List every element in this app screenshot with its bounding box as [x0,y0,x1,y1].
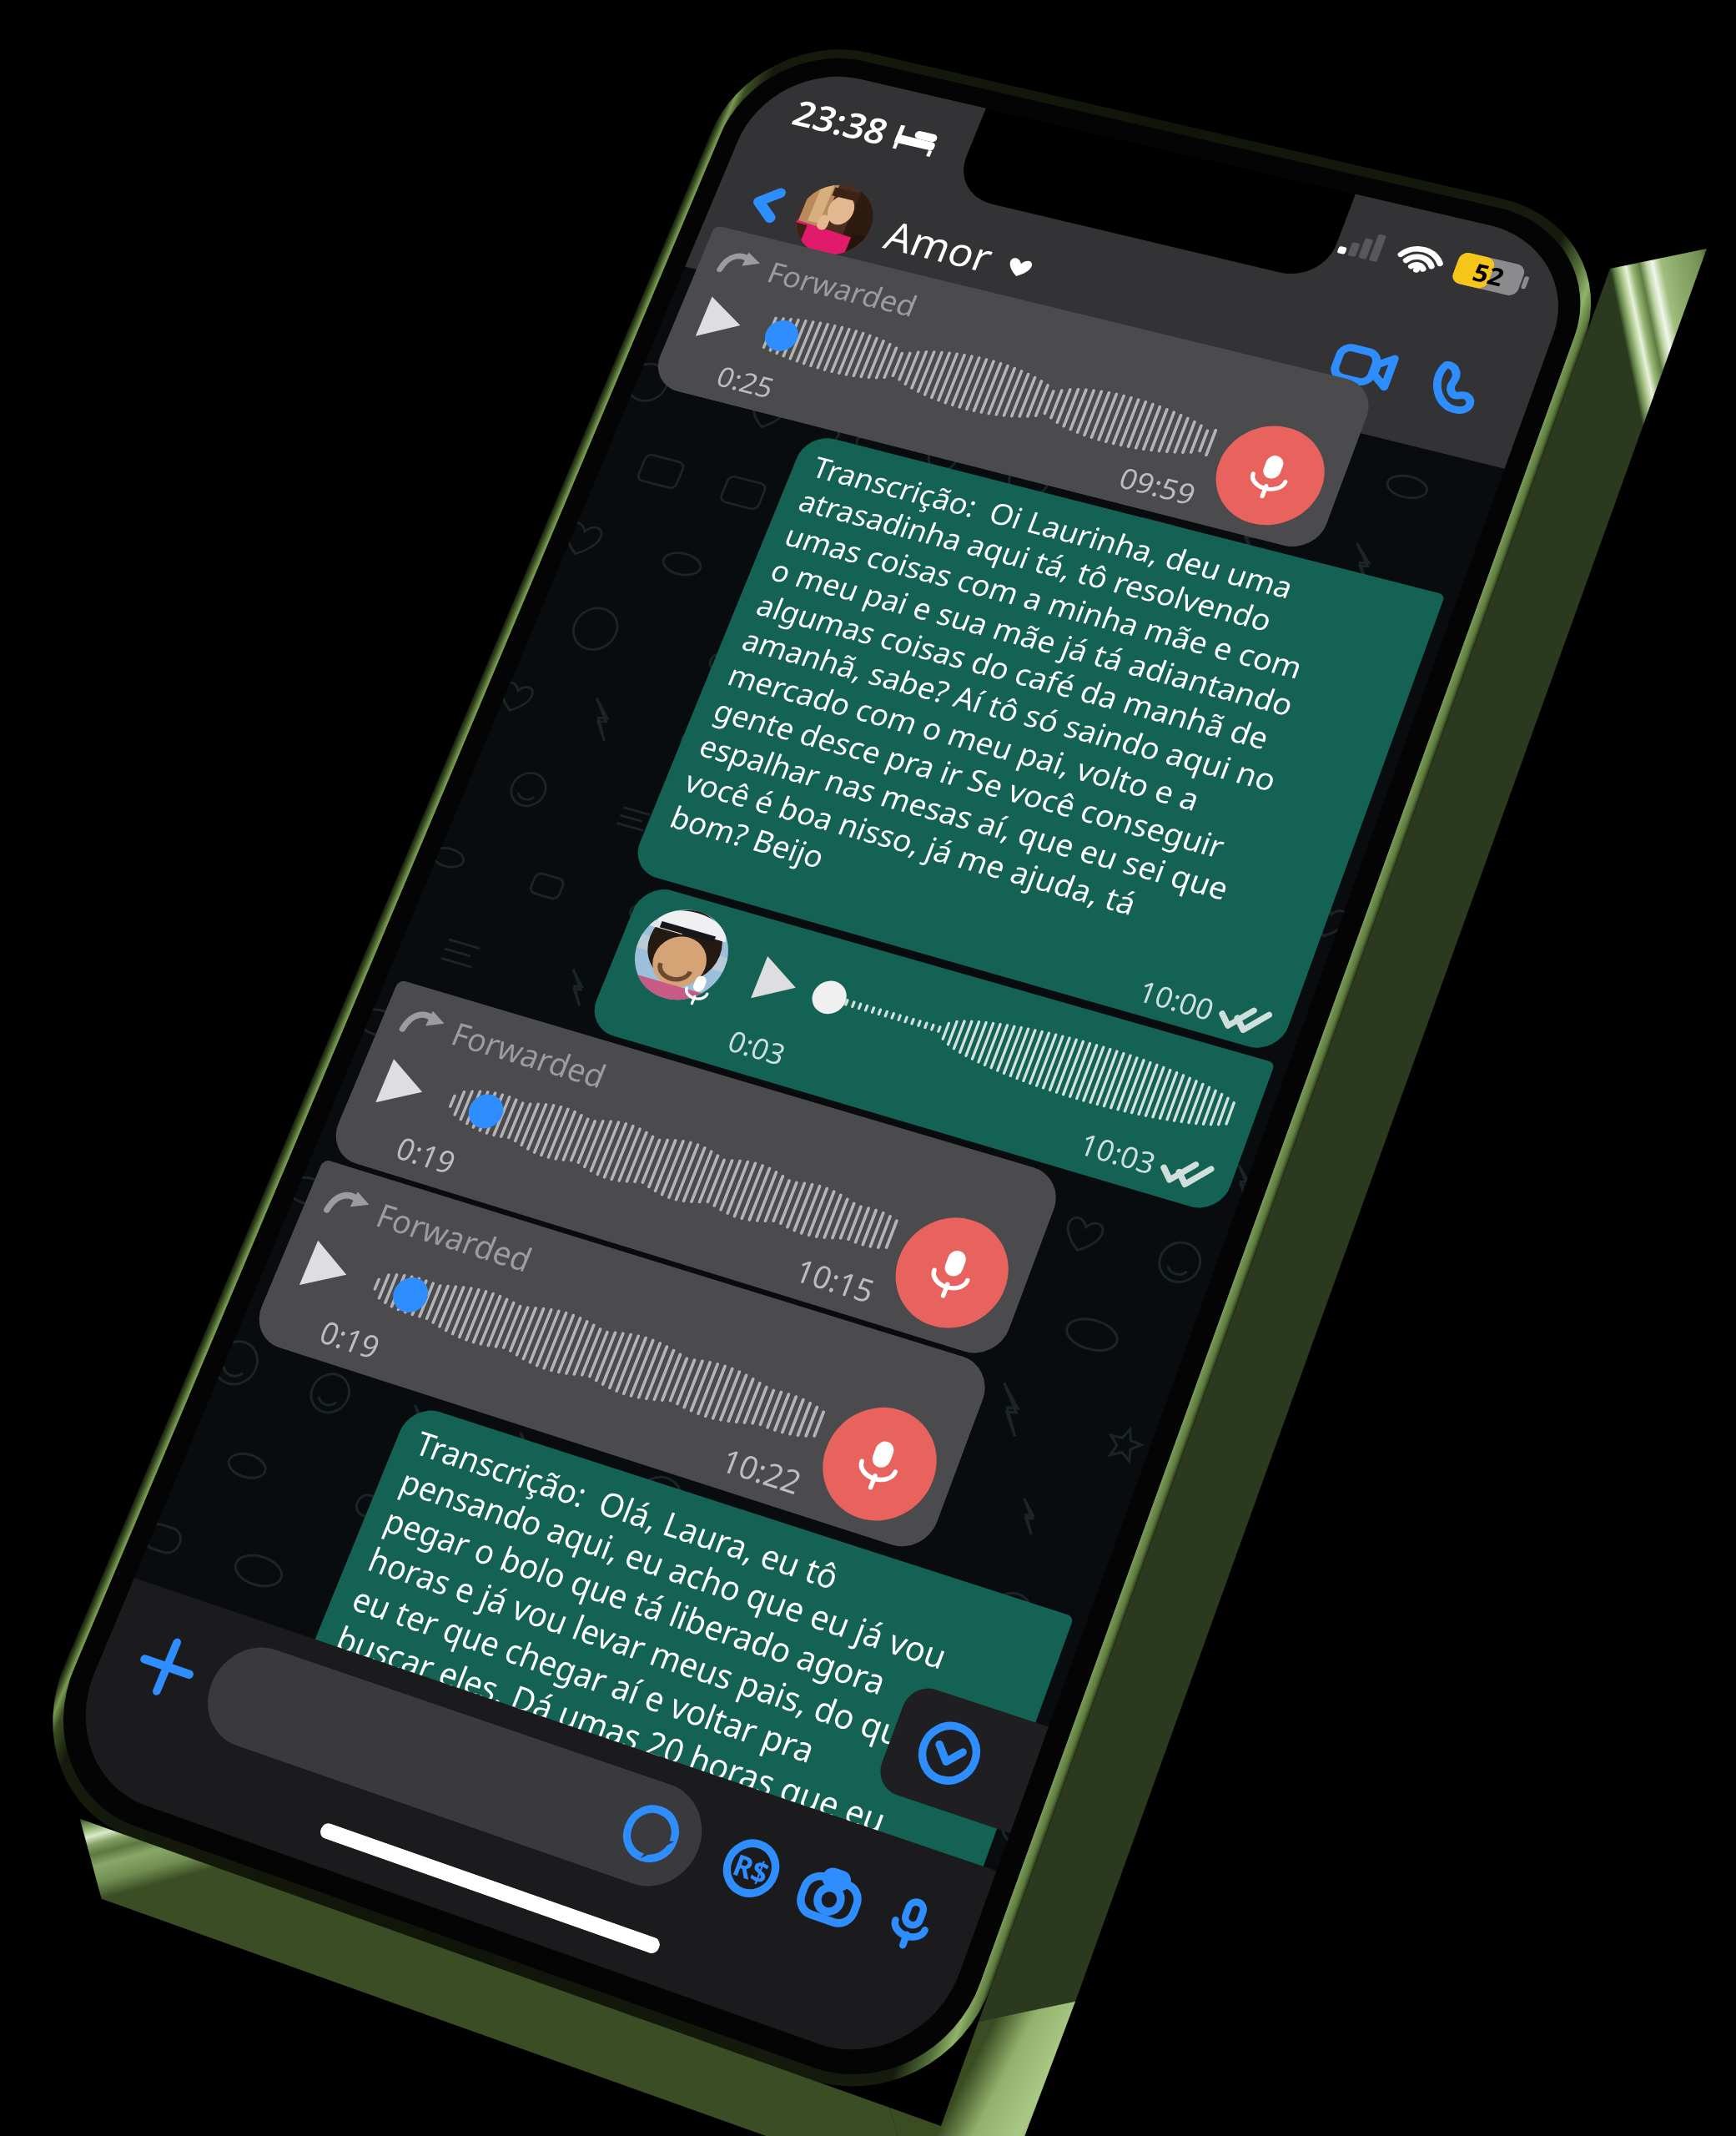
staticText: 0:03 [403,1072,463,1113]
button[interactable]: Video call [733,179,815,261]
button[interactable]: Send money [690,1817,767,1894]
button[interactable] [151,1806,673,1905]
button[interactable]: Forwarded [46,1130,780,1325]
button[interactable]: Attach [58,1812,144,1899]
button[interactable]: Scroll to bottom [812,1643,952,1748]
staticText: Transcrição: Olá, Laura, eu tô pensando … [255,1549,839,1838]
button[interactable]: Record voice message [667,306,778,418]
button[interactable]: Voice message [853,1817,930,1894]
staticText: 0:19 [116,1474,179,1517]
button[interactable]: Voice call [833,179,915,261]
staticText: Forwarded [124,1143,294,1188]
button[interactable]: Forwarded [46,238,797,433]
staticText: 10:15 [556,1273,638,1317]
button[interactable]: Transcrição: Olá, Laura, eu tô pensando … [234,1537,938,1843]
button[interactable]: Transcrição: Oi Laurinha, deu uma atrasa… [234,441,938,952]
button[interactable]: Record voice message [650,1198,762,1310]
staticText: 10:00 [784,906,862,947]
button[interactable]: Forwarded [46,1330,780,1525]
staticText: 10:03 [782,1072,860,1113]
staticText: Forwarded [124,1343,294,1388]
button[interactable]: Record voice message [650,1398,762,1510]
button[interactable]: 0:03 [254,960,938,1123]
button[interactable]: Camera [772,1817,848,1894]
staticText: 52 [850,68,882,105]
staticText: Transcrição: Oi Laurinha, deu uma atrasa… [255,453,840,906]
staticText: 09:59 [573,381,655,425]
staticText: R$ [712,1837,746,1875]
staticText: 10:22 [556,1474,638,1517]
